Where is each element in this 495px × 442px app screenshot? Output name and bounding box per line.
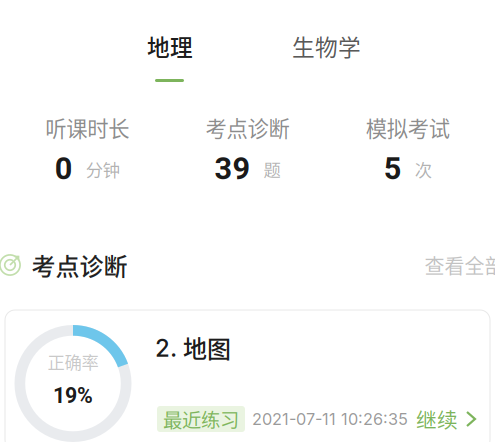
staticText: 模拟考试 <box>366 112 450 143</box>
staticText: 0 <box>55 151 73 187</box>
staticText: 听课时长 <box>45 112 129 143</box>
staticText: 2021-07-11 10:26:35 <box>252 409 408 429</box>
staticText: 继续 <box>416 404 458 434</box>
button[interactable]: 查看全部 <box>424 250 495 279</box>
staticText: 题 <box>263 157 280 182</box>
staticText: 考点诊断 <box>31 248 127 282</box>
staticText: 次 <box>415 157 432 182</box>
staticText: 地理 <box>147 30 193 62</box>
staticText: 最近练习 <box>163 405 239 433</box>
staticText: 正确率 <box>47 349 98 374</box>
staticText: 5 <box>384 151 402 187</box>
staticText: 39 <box>214 151 250 187</box>
staticText: 考点诊断 <box>205 112 289 143</box>
button[interactable]: 生物学 <box>292 34 372 58</box>
staticText: 19% <box>53 383 93 408</box>
button[interactable]: 正确率 <box>5 310 490 442</box>
staticText: 查看全部 <box>424 250 495 279</box>
button[interactable]: 地理 <box>147 34 207 58</box>
staticText: 生物学 <box>292 30 361 62</box>
staticText: 2. 地图 <box>155 330 231 365</box>
staticText: 分钟 <box>86 157 120 182</box>
